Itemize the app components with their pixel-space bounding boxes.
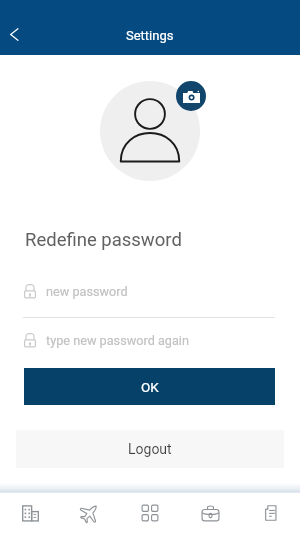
button[interactable]: Change profile photo (176, 81, 206, 111)
button[interactable]: Logout (16, 430, 284, 468)
button[interactable]: OK (24, 368, 275, 405)
button[interactable]: Documents (240, 493, 300, 533)
button[interactable]: Back (0, 20, 29, 49)
button[interactable]: Flights (60, 493, 120, 533)
staticText: Redefine password (25, 229, 182, 251)
staticText: Settings (126, 28, 174, 43)
staticText: OK (141, 379, 159, 395)
button[interactable]: Hotels (0, 493, 60, 533)
button[interactable]: new password (0, 278, 300, 304)
button[interactable]: More (120, 493, 180, 533)
staticText: type new password again (46, 333, 189, 348)
staticText: Logout (128, 441, 172, 457)
staticText: new password (46, 284, 128, 299)
button[interactable]: Business (180, 493, 240, 533)
button[interactable]: type new password again (0, 327, 300, 353)
